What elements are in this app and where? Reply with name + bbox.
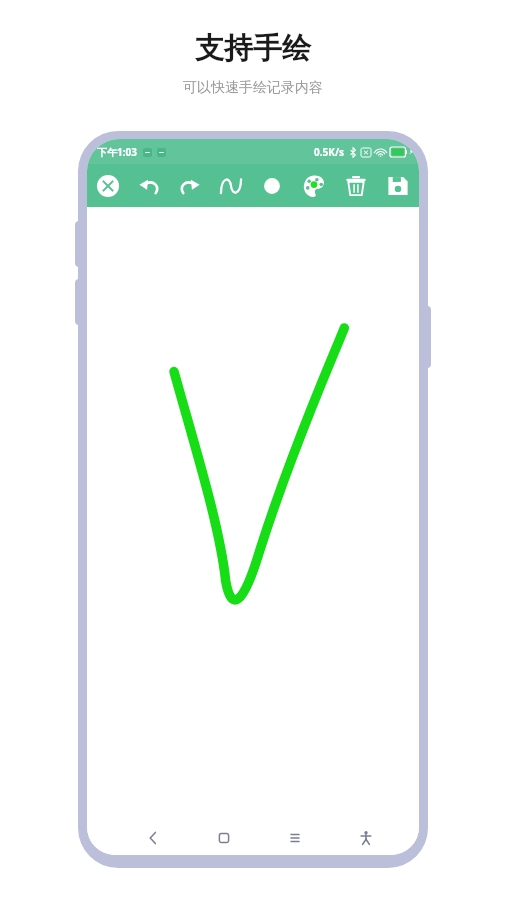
button[interactable]: Recent apps xyxy=(259,821,330,855)
button[interactable]: Accessibility xyxy=(330,821,401,855)
button[interactable]: Undo xyxy=(128,164,169,207)
staticText: 下午1:03 xyxy=(97,145,137,159)
staticText: 可以快速手绘记录内容 xyxy=(183,79,323,97)
button[interactable]: Brush size xyxy=(251,164,293,207)
staticText: 0.5K/s xyxy=(314,145,345,159)
button[interactable]: Back xyxy=(118,821,188,855)
button[interactable]: Redo xyxy=(169,164,210,207)
staticText: ⚡ xyxy=(409,148,414,156)
button[interactable]: Stroke style xyxy=(210,164,251,207)
button[interactable]: Save xyxy=(377,164,419,207)
button[interactable]: Home xyxy=(188,821,259,855)
button[interactable]: Color palette xyxy=(293,164,335,207)
button[interactable]: Close xyxy=(87,164,128,207)
button[interactable]: Delete xyxy=(335,164,377,207)
staticText: 支持手绘 xyxy=(195,30,311,67)
